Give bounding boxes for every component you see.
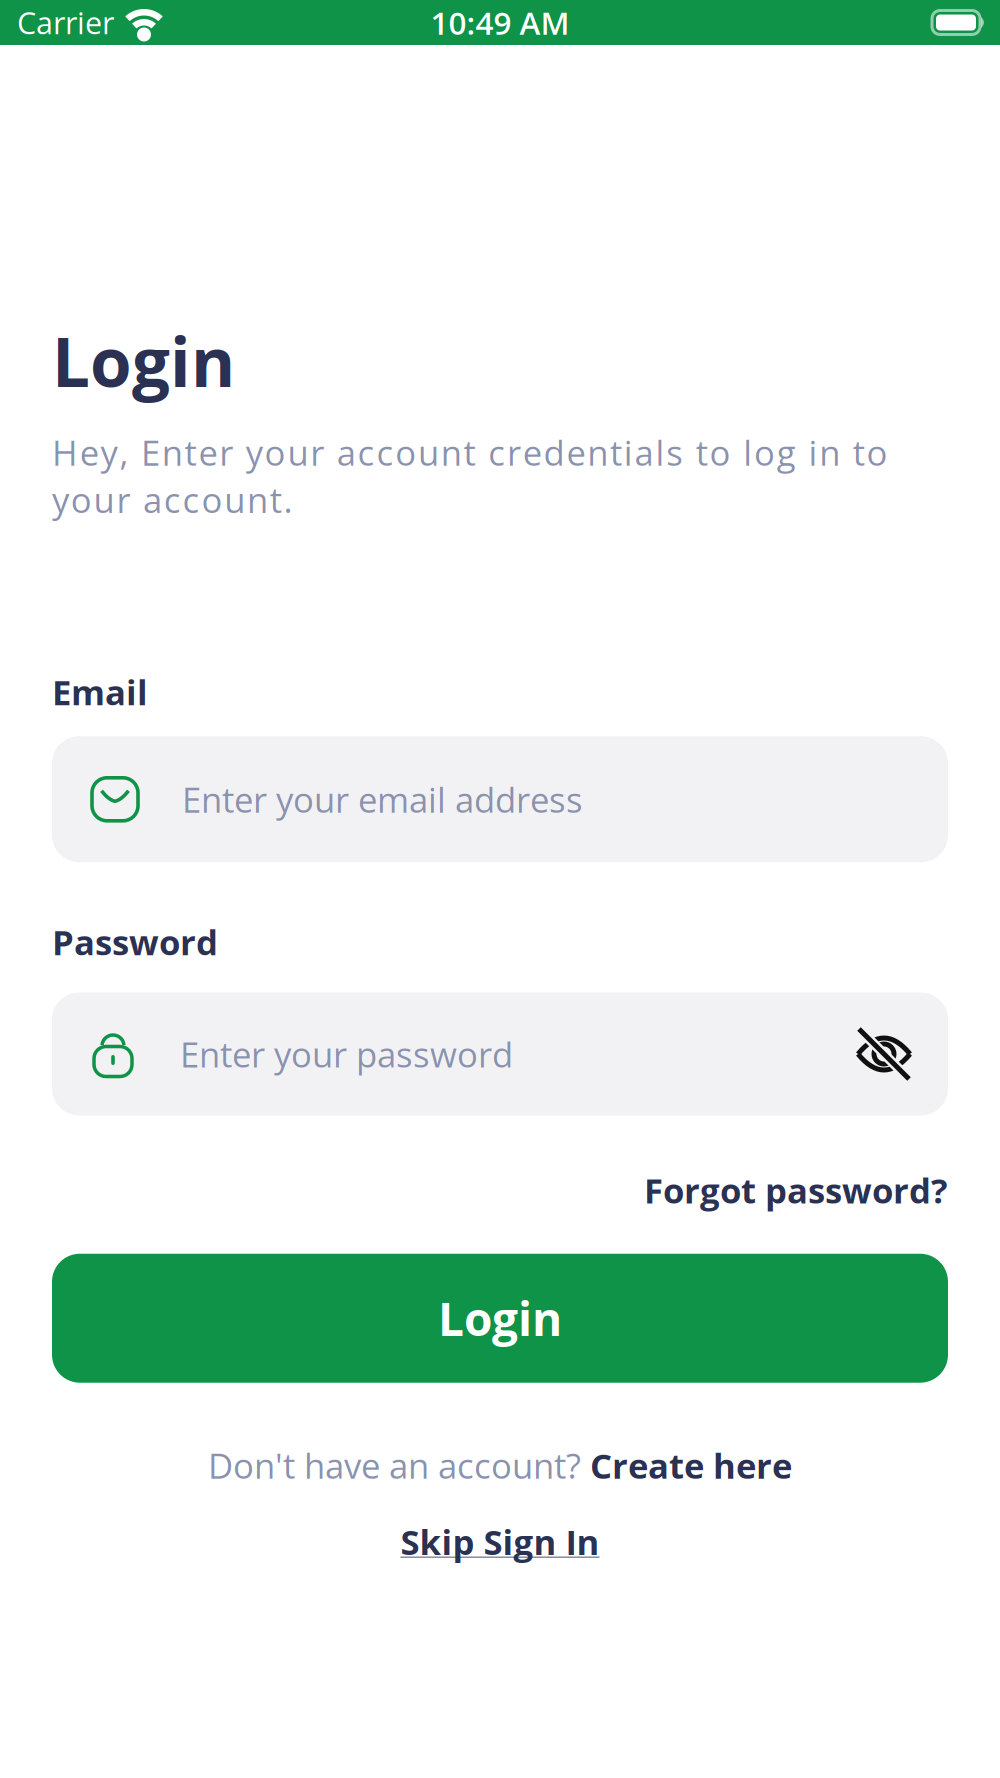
button[interactable]: Login	[52, 1254, 948, 1383]
button[interactable]: Forgot password?	[644, 1166, 948, 1214]
staticText: Enter your password	[180, 1030, 513, 1078]
staticText: 10:49 AM	[430, 1, 569, 44]
staticText: Login	[438, 1287, 562, 1349]
button[interactable]: Create here	[590, 1442, 792, 1489]
button[interactable]: Enter your email address	[52, 736, 948, 862]
staticText: Hey, Enter your account credentials to l…	[52, 429, 888, 523]
button[interactable]: Skip Sign In	[400, 1518, 599, 1565]
staticText: Enter your email address	[182, 776, 583, 823]
staticText: Carrier	[17, 2, 114, 43]
staticText: Forgot password?	[644, 1166, 948, 1214]
staticText: Create here	[590, 1442, 792, 1489]
staticText: Login	[52, 315, 235, 407]
button[interactable]: Enter your password	[52, 992, 948, 1115]
staticText: Don't have an account?	[208, 1442, 590, 1489]
staticText: Skip Sign In	[400, 1518, 599, 1565]
staticText: Password	[52, 918, 218, 965]
staticText: Email	[52, 668, 148, 715]
